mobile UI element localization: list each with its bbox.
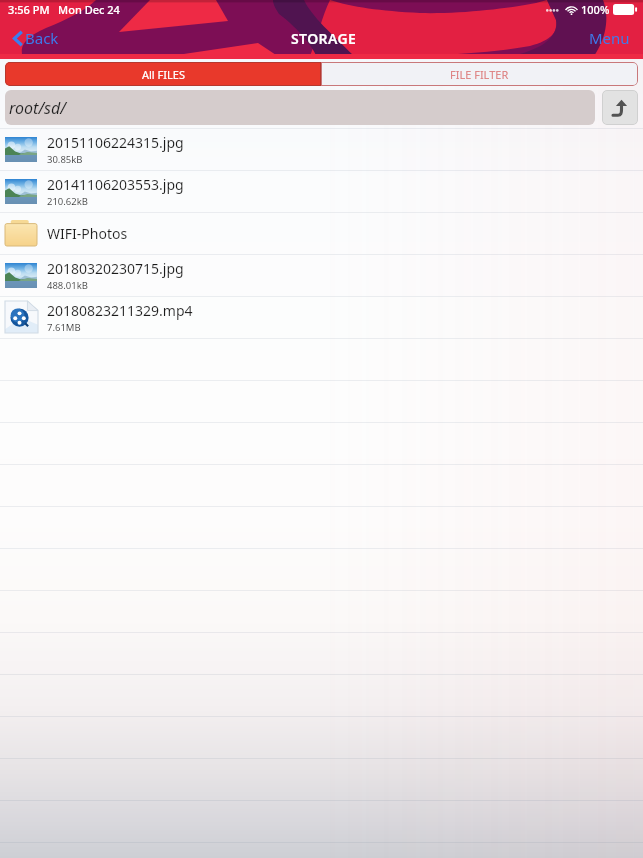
button[interactable]: WIFI-Photos (0, 212, 643, 254)
button[interactable]: 20141106203553.jpg (0, 170, 643, 212)
button[interactable]: All FILES (5, 62, 321, 86)
button[interactable]: root/sd/ (5, 90, 595, 125)
button[interactable]: FILE FILTER (321, 62, 638, 86)
staticText: 100% (581, 2, 610, 17)
button[interactable]: 20180320230715.jpg (0, 254, 643, 296)
staticText: 20151106224315.jpg (47, 133, 184, 152)
staticText: Menu (589, 28, 630, 48)
staticText: Back (25, 28, 59, 48)
button[interactable]: 20180823211329.mp4 (0, 296, 643, 338)
staticText: FILE FILTER (450, 67, 509, 82)
staticText: WIFI-Photos (47, 224, 128, 243)
button[interactable]: Menu (584, 23, 635, 53)
staticText: 488.01kB (47, 279, 88, 292)
staticText: 20180823211329.mp4 (47, 301, 193, 320)
staticText: 7.61MB (47, 321, 81, 334)
staticText: 20180320230715.jpg (47, 259, 184, 278)
staticText: 3:56 PM Mon Dec 24 (8, 2, 120, 17)
staticText: 20141106203553.jpg (47, 175, 184, 194)
staticText: root/sd/ (9, 97, 66, 119)
button[interactable]: Up one level (602, 90, 638, 125)
staticText: All FILES (142, 67, 185, 82)
staticText: 30.85kB (47, 153, 83, 166)
button[interactable]: 20151106224315.jpg (0, 128, 643, 170)
staticText: STORAGE (291, 29, 357, 48)
button[interactable]: Back (8, 23, 64, 53)
staticText: 210.62kB (47, 195, 88, 208)
